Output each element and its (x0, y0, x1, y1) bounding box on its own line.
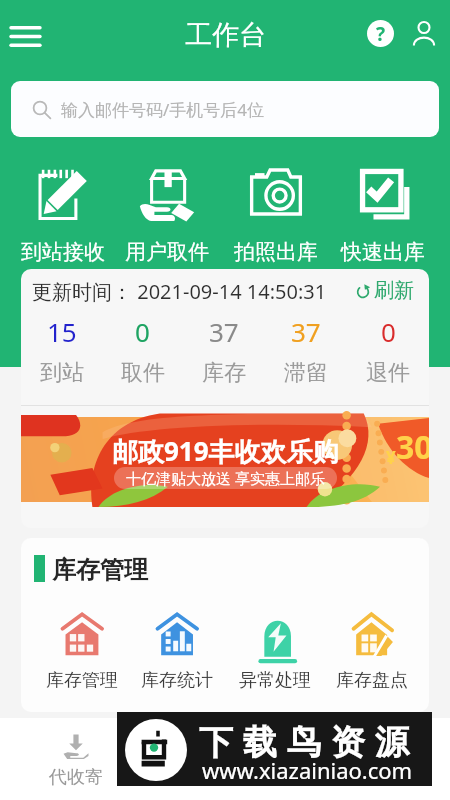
button[interactable]: 37 (265, 314, 347, 387)
staticText: 15 (47, 314, 77, 349)
button[interactable]: 代收寄 (26, 718, 126, 800)
staticText: 0 (135, 314, 150, 349)
staticText: 0 (381, 314, 396, 349)
staticText: 37 (291, 314, 321, 349)
staticText: 30 (396, 425, 429, 469)
staticText: 库存盘点 (336, 669, 408, 692)
button[interactable]: 刷新 (355, 278, 414, 303)
staticText: 更新时间： 2021-09-14 14:50:31 (32, 278, 327, 305)
staticText: 邮政919丰收欢乐购 (112, 433, 339, 469)
staticText: 库存管理 (52, 555, 148, 585)
button[interactable]: 邮政919丰收欢乐购 (21, 417, 429, 502)
staticText: 到站接收 (21, 239, 105, 265)
staticText: 取件 (121, 359, 165, 387)
staticText: 库存统计 (141, 669, 213, 692)
button[interactable]: 库存管理 (34, 613, 130, 692)
button[interactable]: 用户取件 (117, 165, 217, 265)
staticText: 库存 (202, 359, 246, 387)
staticText: 用户取件 (125, 239, 209, 265)
staticText: 工作台 (185, 18, 266, 52)
button[interactable]: 37 (183, 314, 265, 387)
button[interactable]: 库存统计 (129, 613, 225, 692)
button[interactable]: Help (358, 11, 402, 55)
button[interactable]: 0 (102, 314, 183, 387)
button[interactable]: Menu (4, 16, 46, 56)
button[interactable]: Account (402, 12, 445, 55)
button[interactable]: 库存盘点 (324, 613, 420, 692)
staticText: ¥ (386, 446, 396, 469)
staticText: 37 (209, 314, 239, 349)
staticText: 快速出库 (341, 239, 425, 265)
staticText: 退件 (366, 359, 410, 387)
staticText: 代收寄 (49, 766, 103, 789)
button[interactable]: 15 (21, 314, 102, 387)
button[interactable]: 输入邮件号码/手机号后4位 (11, 81, 439, 137)
button[interactable]: 异常处理 (227, 613, 323, 692)
button[interactable]: 到站接收 (13, 165, 113, 265)
staticText: 拍照出库 (234, 239, 318, 265)
staticText: 到站 (40, 359, 84, 387)
staticText: 刷新 (374, 278, 414, 303)
button[interactable]: 快速出库 (333, 165, 433, 265)
staticText: 库存管理 (46, 669, 118, 692)
staticText: ? (376, 21, 386, 47)
staticText: 异常处理 (239, 669, 311, 692)
staticText: 下载鸟资源 (194, 721, 414, 764)
staticText: www.xiazainiao.com (202, 755, 413, 785)
staticText: 十亿津贴大放送 享实惠上邮乐 (126, 468, 325, 488)
button[interactable]: 0 (347, 314, 429, 387)
button[interactable]: 拍照出库 (226, 165, 326, 265)
staticText: 输入邮件号码/手机号后4位 (61, 98, 265, 121)
staticText: 滞留 (284, 359, 328, 387)
